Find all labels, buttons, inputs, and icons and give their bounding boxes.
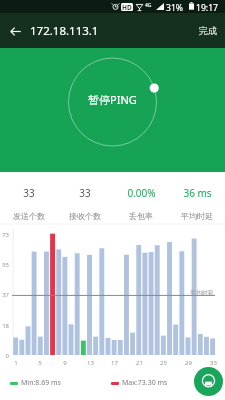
staticText: 4G [145,2,152,9]
staticText: 17 [111,359,118,367]
staticText: 31% [166,2,183,14]
staticText: 33 [23,186,35,200]
staticText: 73 [2,231,9,239]
staticText: 18 [2,322,9,330]
staticText: 25 [160,359,167,367]
staticText: HD [122,3,132,11]
staticText: 丢包率 [129,211,153,221]
button[interactable]: 完成 [191,19,225,42]
staticText: 平均时延 [181,211,213,221]
staticText: 29 [185,359,192,367]
staticText: 21 [136,359,143,367]
staticText: 完成 [199,25,217,36]
staticText: 33 [210,359,217,367]
staticText: Max:73.30 ms [122,378,168,388]
staticText: 暂停PING [88,92,137,107]
button[interactable]: 暂停PING [82,90,143,109]
staticText: 36 ms [183,186,212,200]
staticText: 0 [5,352,9,360]
button[interactable]: 33 [0,172,57,221]
staticText: 5 [38,359,42,367]
staticText: 0.00% [127,186,156,200]
staticText: 19:17 [196,2,218,14]
staticText: 33 [79,186,91,200]
button[interactable]: 33 [57,172,113,221]
staticText: 13 [87,359,94,367]
staticText: 55 [2,261,9,269]
staticText: Min:8.69 ms [21,378,61,388]
button[interactable]: Customer service [194,367,223,396]
staticText: 9 [63,359,67,367]
staticText: 172.18.113.1 [30,23,99,39]
staticText: 接收个数 [69,211,101,221]
staticText: 37 [2,291,9,299]
staticText: 1 [14,359,18,367]
button[interactable]: 36 ms [169,172,225,221]
staticText: 平均时延 [190,289,214,297]
button[interactable]: 0.00% [113,172,169,221]
staticText: 发送个数 [13,211,45,221]
button[interactable]: Back [4,20,26,42]
